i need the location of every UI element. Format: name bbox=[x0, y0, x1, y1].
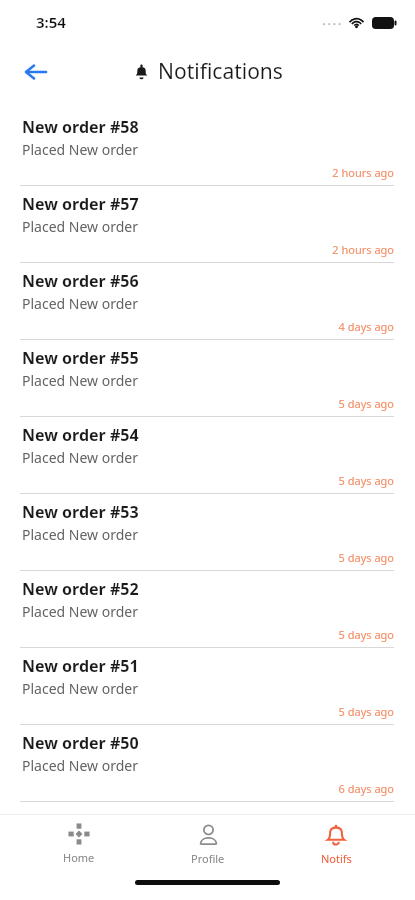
button[interactable]: Back bbox=[14, 50, 58, 94]
staticText: Placed New order bbox=[22, 294, 138, 313]
staticText: New order #52 bbox=[22, 578, 139, 600]
staticText: 5 days ago bbox=[22, 627, 394, 642]
staticText: 4 days ago bbox=[22, 319, 394, 334]
staticText: 5 days ago bbox=[22, 704, 394, 719]
button[interactable]: Notifs bbox=[286, 818, 386, 870]
staticText: Notifs bbox=[321, 851, 352, 866]
staticText: Placed New order bbox=[22, 679, 138, 698]
staticText: New order #53 bbox=[22, 501, 139, 523]
staticText: New order #58 bbox=[22, 116, 139, 138]
staticText: Profile bbox=[191, 851, 225, 866]
staticText: New order #50 bbox=[22, 732, 139, 754]
staticText: Home bbox=[63, 850, 95, 865]
staticText: 2 hours ago bbox=[22, 165, 394, 180]
staticText: New order #57 bbox=[22, 193, 139, 215]
staticText: New order #51 bbox=[22, 655, 139, 677]
staticText: Placed New order bbox=[22, 756, 138, 775]
button[interactable]: New order #52 bbox=[0, 571, 415, 648]
staticText: Placed New order bbox=[22, 371, 138, 390]
staticText: 2 hours ago bbox=[22, 242, 394, 257]
button[interactable]: Home bbox=[29, 819, 129, 869]
button[interactable]: New order #53 bbox=[0, 494, 415, 571]
staticText: New order #54 bbox=[22, 424, 139, 446]
button[interactable]: New order #55 bbox=[0, 340, 415, 417]
button[interactable]: Profile bbox=[158, 819, 258, 870]
button[interactable]: New order #56 bbox=[0, 263, 415, 340]
staticText: New order #56 bbox=[22, 270, 139, 292]
staticText: 5 days ago bbox=[22, 396, 394, 411]
button[interactable]: New order #50 bbox=[0, 725, 415, 802]
staticText: 5 days ago bbox=[22, 473, 394, 488]
staticText: Placed New order bbox=[22, 525, 138, 544]
button[interactable]: New order #57 bbox=[0, 186, 415, 263]
button[interactable]: New order #51 bbox=[0, 648, 415, 725]
staticText: Notifications bbox=[158, 57, 283, 86]
staticText: Placed New order bbox=[22, 602, 138, 621]
staticText: 6 days ago bbox=[22, 781, 394, 796]
staticText: Placed New order bbox=[22, 448, 138, 467]
staticText: Placed New order bbox=[22, 140, 138, 159]
staticText: New order #55 bbox=[22, 347, 139, 369]
button[interactable]: New order #58 bbox=[0, 109, 415, 186]
staticText: 5 days ago bbox=[22, 550, 394, 565]
button[interactable]: New order #54 bbox=[0, 417, 415, 494]
staticText: 3:54 bbox=[36, 12, 66, 32]
staticText: Placed New order bbox=[22, 217, 138, 236]
